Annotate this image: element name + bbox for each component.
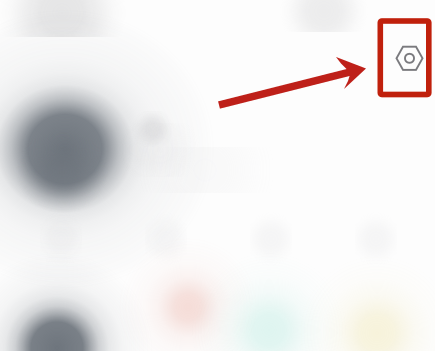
button[interactable]: Settings [0,0,48,73]
